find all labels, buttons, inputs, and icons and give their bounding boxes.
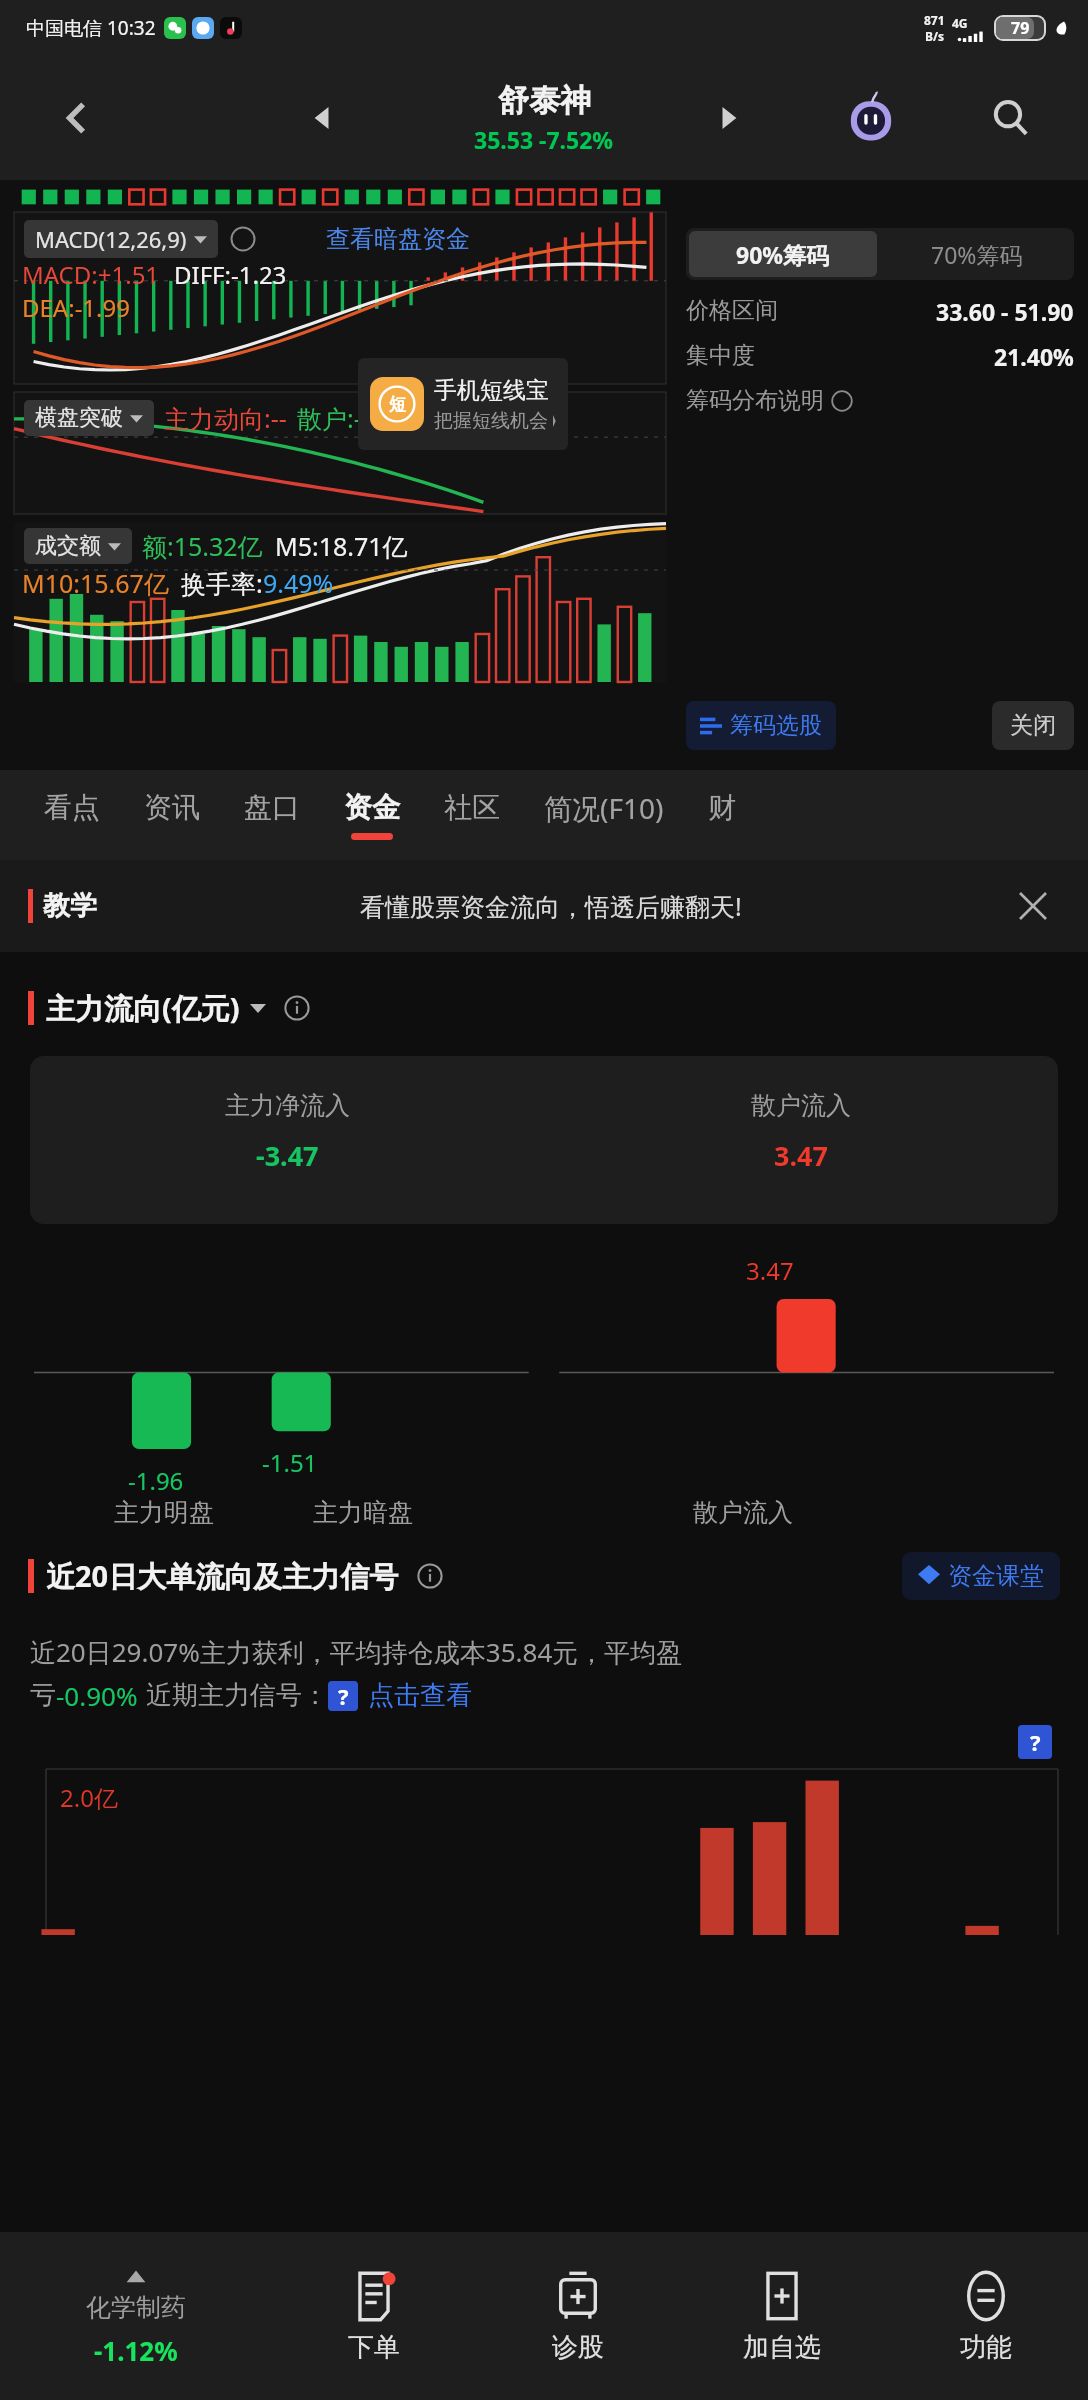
- staticText: 主力暗盘: [313, 1497, 413, 1528]
- staticText: 3.47: [746, 1254, 794, 1287]
- button[interactable]: 关闭: [1010, 711, 1056, 740]
- button[interactable]: 社区: [444, 770, 500, 860]
- button[interactable]: Close banner: [1006, 879, 1060, 933]
- staticText: 换手率:: [181, 566, 263, 600]
- button[interactable]: 筹码分布说明: [686, 386, 853, 415]
- staticText: 简况(F10): [544, 789, 664, 827]
- staticText: DIFF:-1.23: [174, 258, 287, 291]
- button[interactable]: Back: [44, 85, 110, 151]
- button[interactable]: AI assistant: [832, 79, 910, 157]
- button[interactable]: Info: [284, 995, 310, 1021]
- button[interactable]: 资金课堂: [918, 1561, 1044, 1591]
- staticText: 871: [924, 12, 945, 28]
- button[interactable]: 简况(F10): [544, 770, 664, 860]
- staticText: MACD(12,26,9): [35, 224, 187, 254]
- staticText: 额:15.32亿: [142, 529, 263, 563]
- staticText: 关闭: [1010, 711, 1056, 740]
- staticText: 33.60 - 51.90: [936, 296, 1074, 327]
- staticText: 资金: [344, 790, 400, 825]
- button[interactable]: 点击查看: [368, 1679, 472, 1712]
- button[interactable]: 短: [358, 358, 568, 450]
- button[interactable]: Help: [1018, 1725, 1052, 1759]
- staticText: -3.47: [256, 1137, 319, 1174]
- staticText: 主力动向:--: [164, 401, 287, 435]
- staticText: 教学: [43, 889, 97, 923]
- staticText: 看懂股票资金流向，悟透后赚翻天!: [360, 889, 742, 923]
- button[interactable]: 70%筹码: [880, 228, 1074, 280]
- button[interactable]: 资讯: [144, 770, 200, 860]
- staticText: M5:18.71亿: [275, 529, 408, 563]
- staticText: 中国电信 10:32: [26, 15, 156, 41]
- staticText: 90%筹码: [736, 239, 830, 270]
- staticText: ?: [338, 1681, 349, 1711]
- staticText: 亏: [30, 1679, 56, 1712]
- button[interactable]: 财: [708, 770, 736, 860]
- staticText: 横盘突破: [35, 404, 123, 432]
- staticText: 财: [708, 790, 736, 825]
- staticText: 盘口: [244, 790, 300, 825]
- button[interactable]: 诊股: [476, 2232, 680, 2400]
- staticText: 加自选: [743, 2331, 821, 2364]
- button[interactable]: 看点: [44, 770, 100, 860]
- staticText: 资讯: [144, 790, 200, 825]
- staticText: -1.12%: [94, 2333, 178, 2368]
- button[interactable]: 筹码选股: [700, 711, 822, 740]
- staticText: 功能: [960, 2331, 1012, 2364]
- staticText: 短: [389, 394, 406, 415]
- staticText: 散户流入: [693, 1497, 793, 1528]
- staticText: 主力流向(亿元): [46, 988, 240, 1028]
- staticText: 70%筹码: [931, 239, 1023, 270]
- button[interactable]: Next stock: [700, 90, 756, 146]
- button[interactable]: Search: [976, 83, 1046, 153]
- staticText: 主力净流入: [225, 1090, 350, 1121]
- button[interactable]: 功能: [884, 2232, 1088, 2400]
- staticText: 手机短线宝: [434, 376, 549, 405]
- staticText: 79: [1011, 17, 1030, 39]
- staticText: 看点: [44, 790, 100, 825]
- staticText: 近20日29.07%主力获利，平均持仓成本35.84元，平均盈: [30, 1634, 683, 1670]
- staticText: 把握短线机会: [434, 409, 548, 433]
- staticText: 诊股: [552, 2331, 604, 2364]
- staticText: 散户:--: [297, 401, 370, 435]
- button[interactable]: 成交额: [35, 532, 121, 560]
- staticText: 筹码选股: [730, 711, 822, 740]
- staticText: 化学制药: [86, 2292, 186, 2323]
- staticText: 散户流入: [751, 1090, 851, 1121]
- button[interactable]: 资金: [344, 770, 400, 860]
- staticText: 资金课堂: [948, 1561, 1044, 1591]
- staticText: 35.53 -7.52%: [474, 124, 614, 155]
- button[interactable]: 加自选: [680, 2232, 884, 2400]
- staticText: 集中度: [686, 341, 755, 370]
- button[interactable]: MACD help: [230, 226, 256, 252]
- staticText: 3.47: [774, 1137, 828, 1174]
- button[interactable]: 查看暗盘资金: [326, 224, 470, 254]
- staticText: 主力明盘: [114, 1497, 214, 1528]
- button[interactable]: MACD(12,26,9): [35, 224, 207, 254]
- staticText: M10:15.67亿: [22, 566, 169, 600]
- button[interactable]: 横盘突破: [35, 404, 143, 432]
- staticText: 21.40%: [994, 341, 1074, 372]
- staticText: ?: [1030, 1727, 1041, 1757]
- staticText: 舒泰神: [498, 81, 591, 120]
- staticText: MACD:+1.51: [22, 258, 160, 291]
- staticText: 2.0亿: [60, 1781, 118, 1814]
- button[interactable]: 下单: [272, 2232, 476, 2400]
- button[interactable]: 90%筹码: [689, 231, 877, 277]
- button[interactable]: 化学制药: [0, 2232, 272, 2400]
- staticText: 价格区间: [686, 296, 778, 325]
- button[interactable]: Info: [417, 1563, 443, 1589]
- staticText: 下单: [348, 2331, 400, 2364]
- staticText: -1.51: [262, 1446, 318, 1479]
- staticText: 社区: [444, 790, 500, 825]
- staticText: 4G: [952, 15, 968, 31]
- button[interactable]: Change metric: [250, 1000, 266, 1016]
- staticText: 近20日大单流向及主力信号: [46, 1556, 399, 1596]
- staticText: 筹码分布说明: [686, 386, 824, 415]
- staticText: 成交额: [35, 532, 101, 560]
- staticText: 近期主力信号：: [146, 1679, 328, 1712]
- button[interactable]: 盘口: [244, 770, 300, 860]
- button[interactable]: Previous stock: [295, 90, 351, 146]
- staticText: 9.49%: [263, 566, 334, 600]
- staticText: B/s: [925, 28, 944, 44]
- staticText: DEA:-1.99: [22, 291, 130, 324]
